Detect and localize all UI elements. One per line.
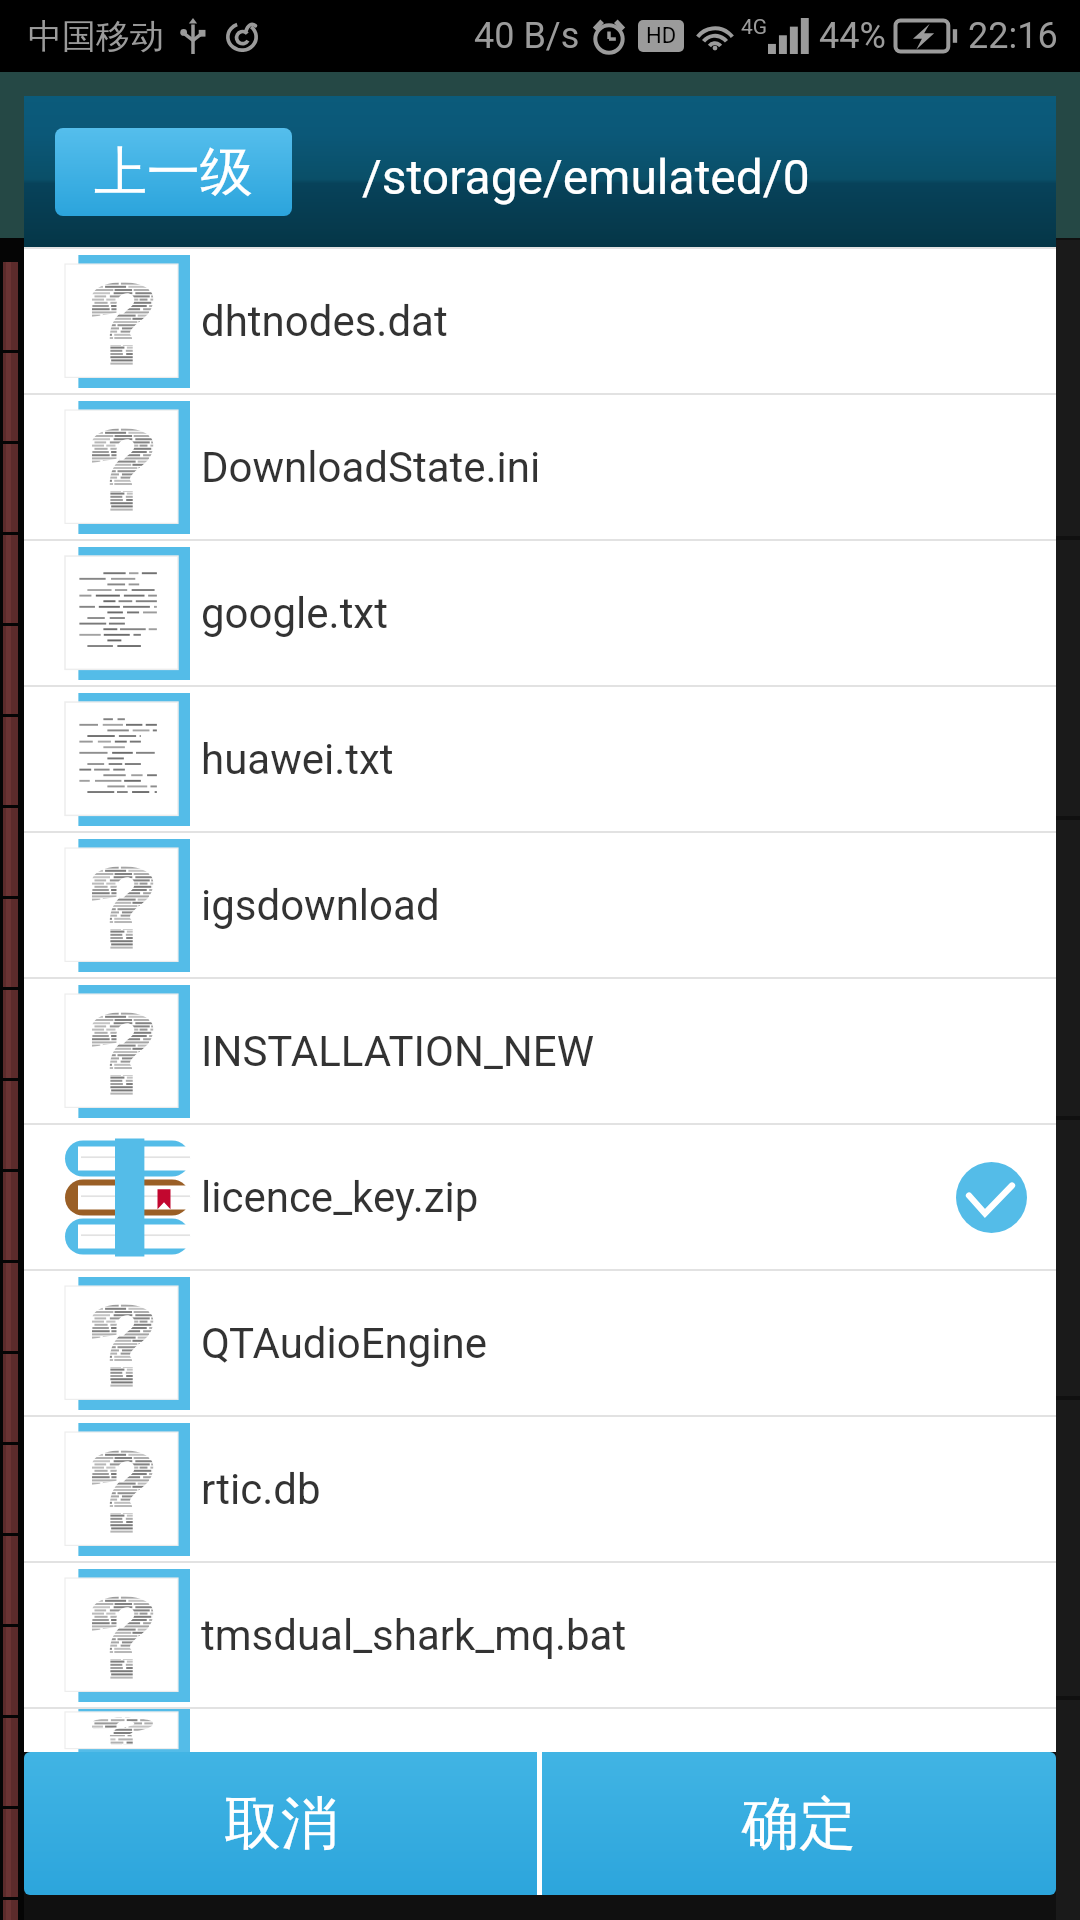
button[interactable]: dhtnodes.dat	[24, 249, 1056, 393]
button[interactable]: 确定	[542, 1752, 1056, 1895]
staticText: QTAudioEngine	[201, 1319, 487, 1368]
staticText: 4G	[741, 15, 768, 40]
staticText: 上一级	[94, 139, 253, 206]
staticText: 取消	[224, 1788, 338, 1860]
staticText: INSTALLATION_NEW	[201, 1027, 594, 1076]
staticText: 中国移动	[28, 15, 164, 58]
staticText: 22:16	[968, 15, 1058, 57]
staticText: google.txt	[201, 589, 388, 638]
button[interactable]: QTAudioEngine	[24, 1271, 1056, 1415]
staticText: rtic.db	[201, 1465, 321, 1514]
button[interactable]: google.txt	[24, 541, 1056, 685]
button[interactable]: 取消	[24, 1752, 537, 1895]
staticText: 确定	[742, 1788, 856, 1860]
staticText: licence_key.zip	[201, 1173, 479, 1222]
staticText: igsdownload	[201, 881, 440, 930]
button[interactable]: rtic.db	[24, 1417, 1056, 1561]
button[interactable]: licence_key.zip	[24, 1125, 1056, 1269]
staticText: HD	[646, 23, 677, 49]
button[interactable]: DownloadState.ini	[24, 395, 1056, 539]
other: Selected	[956, 1162, 1027, 1233]
staticText: dhtnodes.dat	[201, 297, 448, 346]
staticText: 40 B/s	[474, 15, 580, 57]
button[interactable]: 上一级	[55, 128, 292, 216]
staticText: /storage/emulated/0	[362, 149, 810, 205]
staticText: tmsdual_shark_mq.bat	[201, 1611, 627, 1660]
staticText: 44%	[819, 15, 886, 57]
button[interactable]: huawei.txt	[24, 687, 1056, 831]
button[interactable]: igsdownload	[24, 833, 1056, 977]
button[interactable]: INSTALLATION_NEW	[24, 979, 1056, 1123]
staticText: DownloadState.ini	[201, 443, 541, 492]
button[interactable]: tmsdual_shark_mq.bat	[24, 1563, 1056, 1707]
staticText: huawei.txt	[201, 735, 394, 784]
button[interactable]	[24, 1709, 1056, 1752]
